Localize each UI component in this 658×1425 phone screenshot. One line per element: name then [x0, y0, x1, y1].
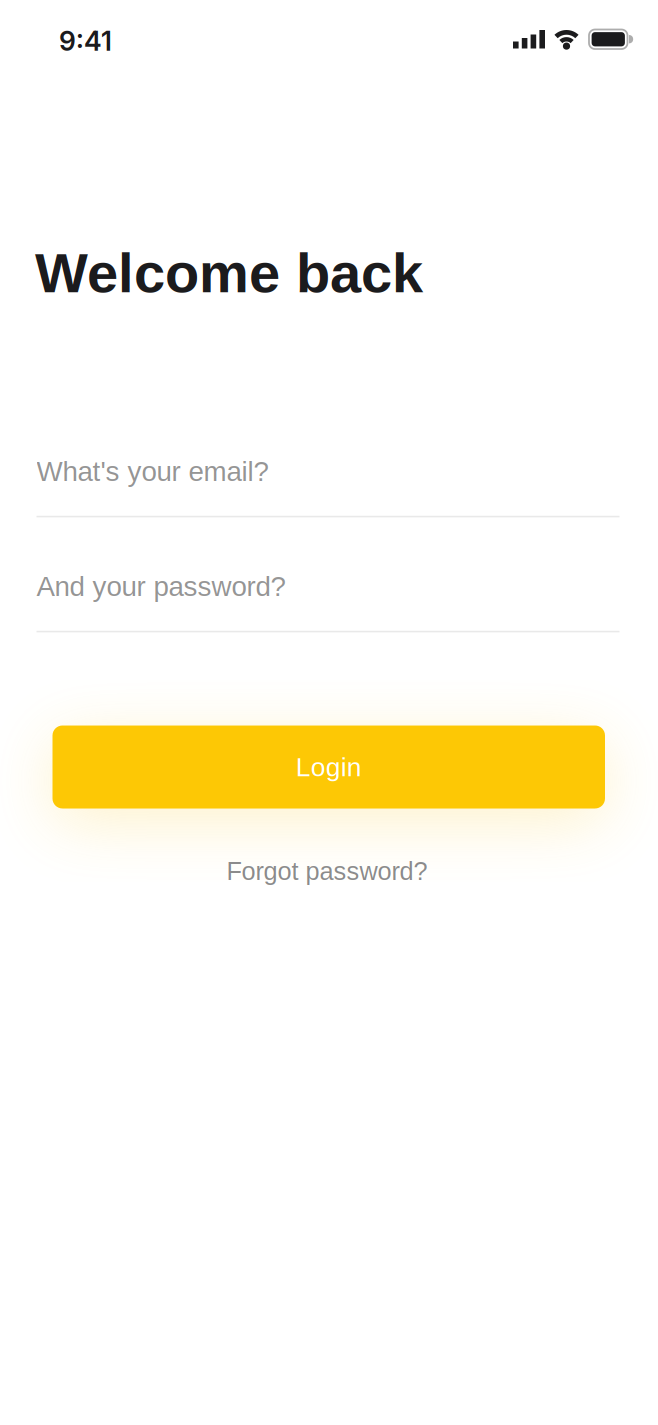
- button[interactable]: What's your email?: [36, 456, 619, 517]
- staticText: Forgot password?: [226, 857, 427, 885]
- button[interactable]: Forgot password?: [226, 857, 427, 885]
- staticText: What's your email?: [36, 456, 268, 487]
- staticText: Welcome back: [35, 241, 423, 304]
- button[interactable]: And your password?: [36, 571, 619, 632]
- button[interactable]: Login: [52, 725, 605, 808]
- staticText: Login: [296, 752, 362, 782]
- staticText: And your password?: [36, 571, 285, 602]
- staticText: 9:41: [59, 25, 112, 57]
